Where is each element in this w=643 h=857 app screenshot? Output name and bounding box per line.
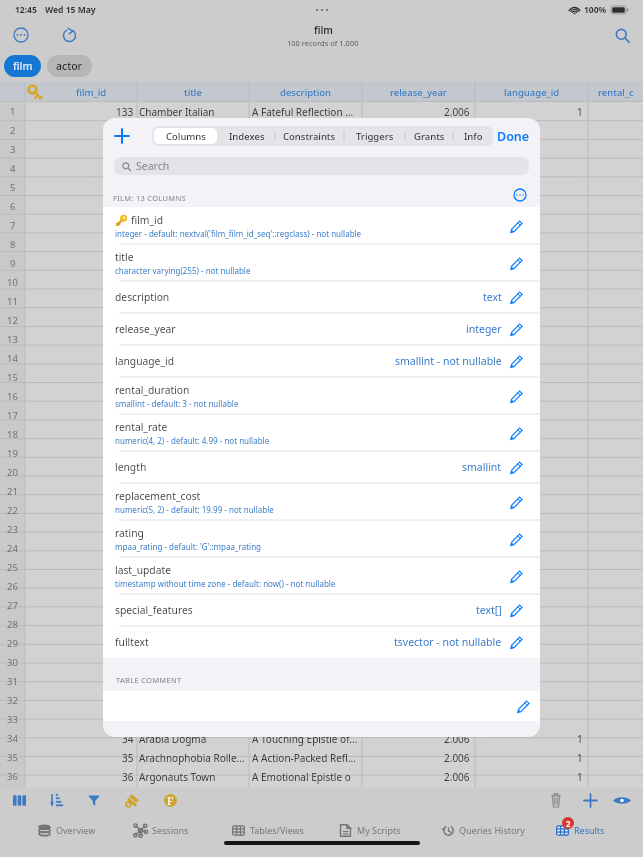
button[interactable]: Search	[114, 157, 529, 175]
button[interactable]: fulltext	[103, 626, 540, 658]
button[interactable]: Edit replacement_cost	[505, 491, 527, 513]
button[interactable]: Edit comment	[103, 691, 540, 721]
staticText: 5	[10, 181, 16, 194]
button[interactable]: Edit length	[505, 456, 527, 478]
button[interactable]: Indexes	[219, 126, 275, 146]
staticText: 100 records of 1.000	[287, 38, 359, 48]
staticText: 1	[577, 770, 583, 784]
button[interactable]: Edit description	[505, 286, 527, 308]
button[interactable]: More	[6, 20, 36, 50]
staticText: 24	[7, 542, 18, 555]
button[interactable]: Edit comment	[511, 694, 535, 718]
button[interactable]: rental_rate	[103, 414, 540, 451]
staticText: Overview	[56, 824, 96, 836]
button[interactable]: replacement_cost	[103, 483, 540, 520]
staticText: 1	[10, 105, 16, 118]
staticText: 2.006	[444, 732, 470, 746]
staticText: F	[167, 794, 174, 807]
button[interactable]: Sort	[47, 791, 65, 809]
button[interactable]: Edit fulltext	[505, 631, 527, 653]
button[interactable]: Add column	[109, 123, 135, 149]
button[interactable]: length	[103, 451, 540, 483]
button[interactable]: View	[612, 790, 632, 810]
staticText: Grants	[414, 130, 445, 143]
button[interactable]: Overview	[38, 821, 96, 839]
button[interactable]: Filter	[85, 791, 103, 809]
staticText: fulltext	[115, 635, 149, 649]
staticText: 7	[10, 219, 16, 232]
button[interactable]: rating	[103, 520, 540, 557]
button[interactable]: Sessions	[134, 821, 189, 839]
staticText: description	[115, 290, 170, 304]
button[interactable]: Delete	[547, 791, 565, 809]
staticText: 25	[7, 561, 18, 574]
staticText: 100%	[584, 4, 607, 16]
button[interactable]: film_id	[103, 207, 540, 244]
staticText: length	[115, 460, 147, 474]
staticText: 10	[7, 276, 18, 289]
staticText: Search	[136, 159, 170, 173]
button[interactable]: Constraints	[275, 126, 344, 146]
staticText: text	[483, 290, 502, 304]
button[interactable]: release_year	[103, 313, 540, 345]
staticText: 36	[7, 770, 18, 783]
staticText: 27	[7, 599, 18, 612]
staticText: text[]	[476, 603, 502, 617]
button[interactable]: Add row	[581, 791, 599, 809]
staticText: Chamber Italian	[139, 105, 215, 119]
button[interactable]: actor	[47, 55, 92, 77]
button[interactable]: Columns	[154, 128, 217, 144]
staticText: 2.006	[444, 751, 470, 765]
staticText: Arachnophobia Rolle...	[139, 751, 245, 765]
staticText: 2	[566, 818, 571, 829]
staticText: 3	[10, 143, 16, 156]
button[interactable]: Grants	[405, 126, 453, 146]
button[interactable]: rental_duration	[103, 377, 540, 414]
button[interactable]: Edit rental_rate	[505, 422, 527, 444]
button[interactable]: Columns	[10, 791, 28, 809]
button[interactable]: Font	[161, 791, 179, 809]
button[interactable]: language_id	[103, 345, 540, 377]
button[interactable]: Edit release_year	[505, 318, 527, 340]
staticText: My Scripts	[357, 824, 401, 836]
button[interactable]: Edit special_features	[505, 599, 527, 621]
staticText: 8	[10, 238, 16, 251]
button[interactable]: last_update	[103, 557, 540, 594]
button[interactable]: Tables/Views	[232, 821, 304, 839]
staticText: release_year	[115, 322, 176, 336]
staticText: language_id	[504, 86, 560, 99]
button[interactable]: Edit film_id	[505, 215, 527, 237]
button[interactable]: Edit rating	[505, 528, 527, 550]
staticText: Argonauts Town	[139, 770, 216, 784]
button[interactable]: Edit title	[505, 252, 527, 274]
button[interactable]: Done	[489, 124, 538, 149]
staticText: 4	[10, 162, 16, 175]
button[interactable]: Info	[453, 126, 493, 146]
button[interactable]: Triggers	[344, 126, 405, 146]
button[interactable]: title	[103, 244, 540, 281]
button[interactable]: film	[4, 55, 41, 77]
button[interactable]: description	[103, 281, 540, 313]
staticText: 21	[7, 485, 18, 498]
staticText: numeric(4, 2) - default: 4.99 - not null…	[115, 435, 270, 446]
button[interactable]: Format	[124, 791, 142, 809]
staticText: film	[314, 23, 333, 37]
staticText: 15	[7, 371, 18, 384]
button[interactable]: Edit language_id	[505, 350, 527, 372]
button[interactable]: special_features	[103, 594, 540, 626]
button[interactable]: Queries History	[441, 821, 525, 839]
button[interactable]: My Scripts	[339, 821, 401, 839]
button[interactable]: Options	[510, 185, 530, 205]
staticText: 9	[10, 257, 16, 270]
staticText: 1	[577, 732, 583, 746]
staticText: TABLE COMMENT	[116, 675, 182, 685]
staticText: 12	[7, 314, 18, 327]
button[interactable]: Search	[607, 20, 637, 50]
staticText: 35	[7, 751, 18, 764]
button[interactable]: 2	[556, 821, 605, 839]
button[interactable]: Edit last_update	[505, 565, 527, 587]
staticText: Indexes	[229, 130, 265, 143]
button[interactable]: Edit rental_duration	[505, 385, 527, 407]
staticText: 16	[7, 390, 18, 403]
button[interactable]: Refresh	[54, 20, 84, 50]
